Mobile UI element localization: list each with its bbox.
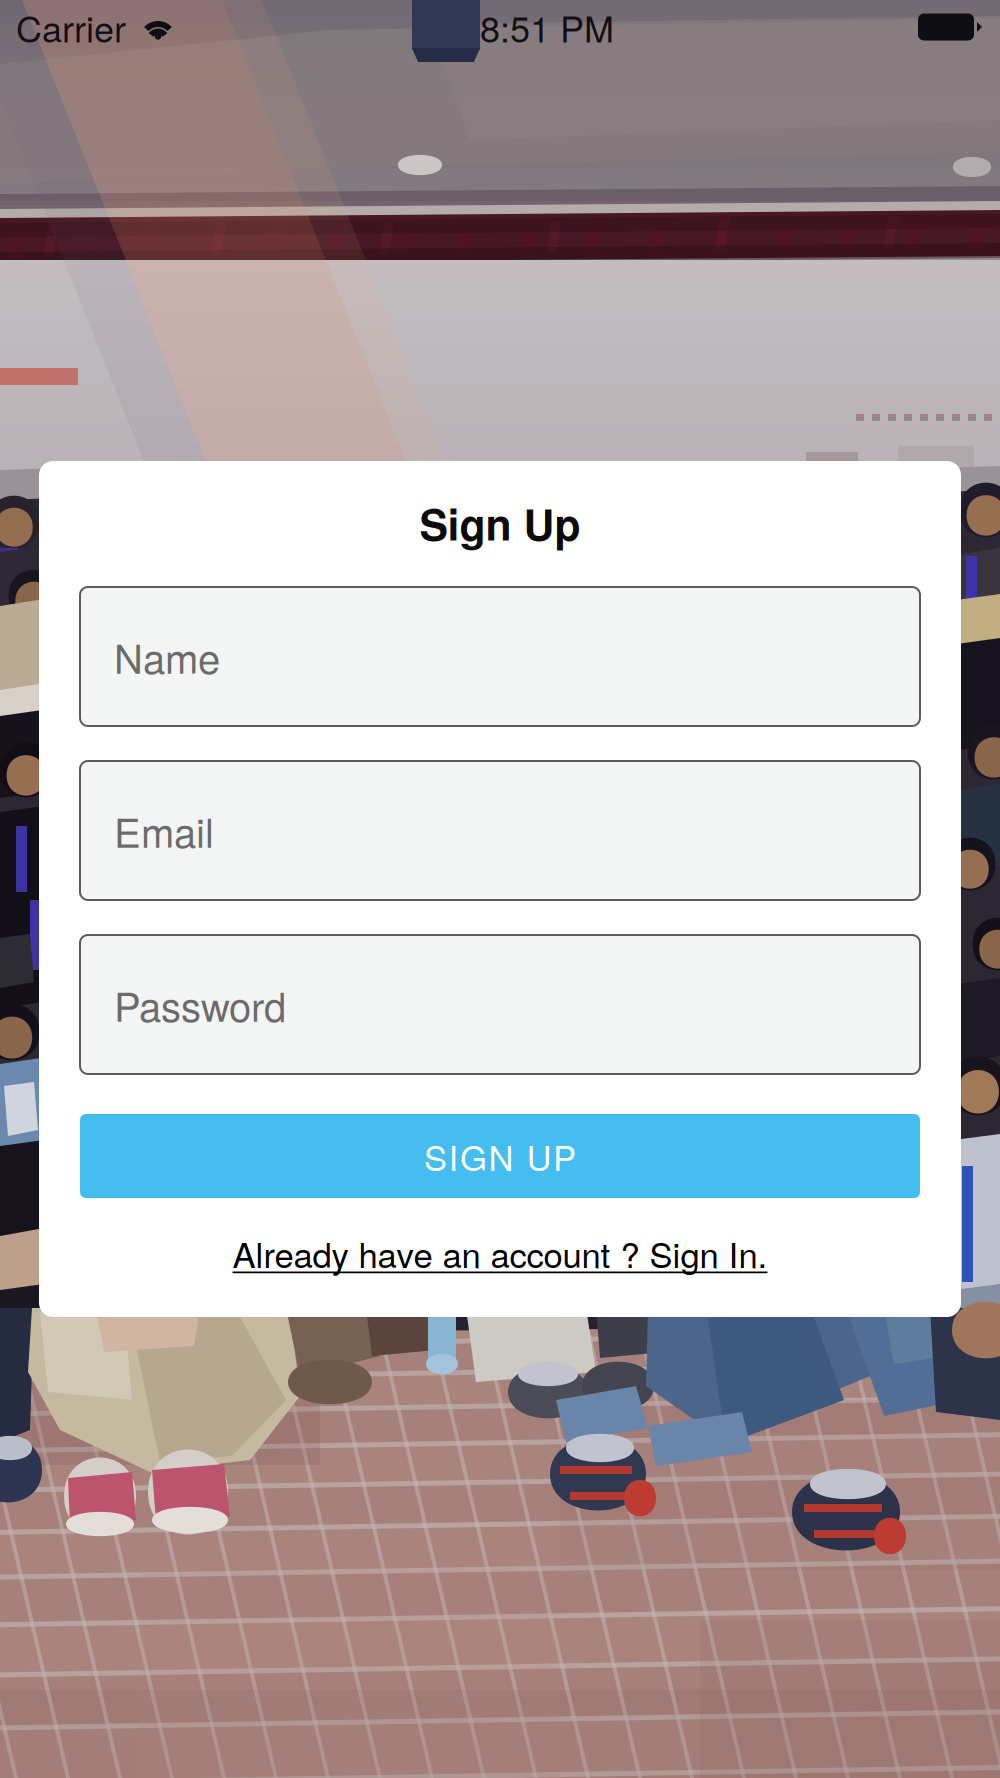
- staticText: Carrier: [16, 1, 126, 53]
- staticText: 8:51 PM: [480, 1, 614, 53]
- staticText: Password: [114, 976, 286, 1033]
- button[interactable]: SIGN UP: [80, 1114, 920, 1198]
- staticText: Already have an account ? Sign In.: [232, 1228, 767, 1278]
- staticText: Name: [114, 628, 220, 685]
- staticText: SIGN UP: [424, 1131, 576, 1181]
- staticText: Email: [114, 802, 214, 859]
- button[interactable]: Already have an account ? Sign In.: [80, 1198, 920, 1291]
- staticText: Sign Up: [419, 492, 580, 554]
